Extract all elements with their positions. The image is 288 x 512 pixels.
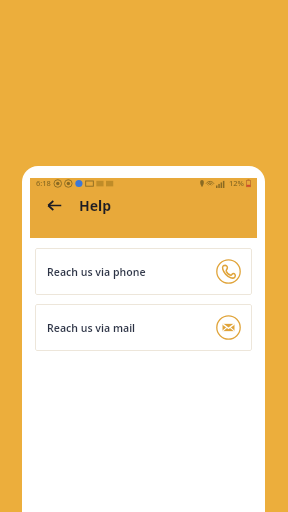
button[interactable]: Reach us via mail bbox=[35, 304, 252, 351]
staticText: Help bbox=[79, 196, 112, 215]
staticText: Reach us via mail bbox=[47, 321, 136, 335]
button[interactable]: Reach us via phone bbox=[35, 248, 252, 295]
button[interactable]: Back bbox=[41, 192, 67, 218]
staticText: 6:18 bbox=[36, 178, 51, 188]
staticText: 12% bbox=[229, 178, 244, 188]
staticText: Reach us via phone bbox=[47, 265, 146, 279]
